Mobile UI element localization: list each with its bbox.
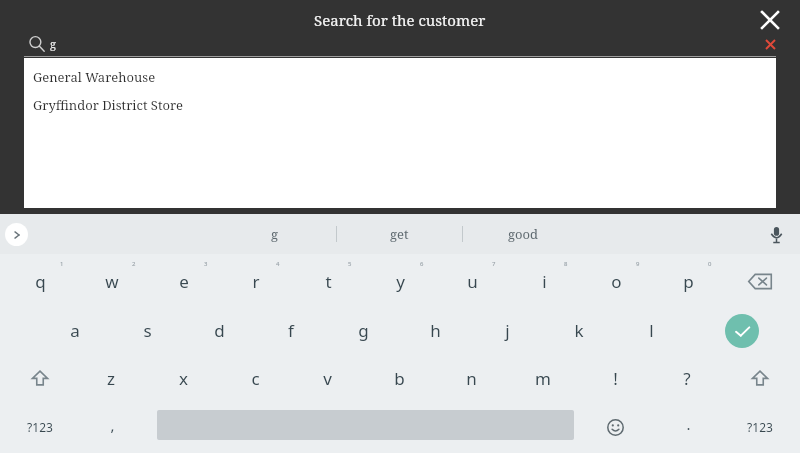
staticText: s bbox=[143, 319, 152, 342]
staticText: g bbox=[271, 225, 278, 243]
button[interactable]: good bbox=[473, 219, 573, 249]
button[interactable]: Expand suggestions bbox=[5, 223, 28, 246]
staticText: y bbox=[396, 270, 405, 293]
button[interactable]: Voice input bbox=[762, 221, 790, 249]
button[interactable]: ?123 bbox=[14, 405, 66, 449]
staticText: n bbox=[466, 367, 477, 390]
button[interactable]: ? bbox=[661, 356, 713, 400]
button[interactable]: n bbox=[445, 356, 497, 400]
button[interactable]: General Warehouse bbox=[24, 63, 776, 91]
button[interactable]: h bbox=[409, 308, 461, 352]
staticText: General Warehouse bbox=[33, 68, 156, 86]
staticText: q bbox=[35, 270, 46, 293]
staticText: l bbox=[649, 319, 654, 342]
button[interactable]: g bbox=[224, 219, 324, 249]
button[interactable]: u bbox=[446, 259, 498, 303]
button[interactable]: Emoji bbox=[589, 405, 641, 449]
button[interactable]: e bbox=[158, 259, 210, 303]
staticText: 9 bbox=[636, 260, 640, 268]
button[interactable]: q bbox=[14, 259, 66, 303]
staticText: e bbox=[179, 270, 189, 293]
staticText: 7 bbox=[492, 260, 496, 268]
staticText: u bbox=[467, 270, 478, 293]
button[interactable]: Close bbox=[750, 6, 790, 34]
button[interactable]: Clear search bbox=[756, 33, 784, 55]
button[interactable]: p bbox=[662, 259, 714, 303]
button[interactable]: c bbox=[229, 356, 281, 400]
staticText: k bbox=[574, 319, 584, 342]
button[interactable]: j bbox=[481, 308, 533, 352]
staticText: v bbox=[323, 367, 332, 390]
button[interactable]: i bbox=[518, 259, 570, 303]
staticText: r bbox=[252, 270, 260, 293]
staticText: ! bbox=[613, 367, 618, 390]
staticText: t bbox=[325, 270, 332, 293]
button[interactable]: k bbox=[553, 308, 605, 352]
button[interactable]: t bbox=[302, 259, 354, 303]
button[interactable]: g bbox=[337, 308, 389, 352]
button[interactable]: Shift bbox=[14, 356, 66, 400]
button[interactable]: l bbox=[625, 308, 677, 352]
staticText: 8 bbox=[564, 260, 568, 268]
button[interactable]: y bbox=[374, 259, 426, 303]
staticText: 0 bbox=[708, 260, 712, 268]
staticText: d bbox=[214, 319, 225, 342]
staticText: 3 bbox=[204, 260, 208, 268]
button[interactable]: Backspace bbox=[734, 259, 786, 303]
staticText: good bbox=[508, 225, 538, 243]
staticText: 6 bbox=[420, 260, 424, 268]
staticText: j bbox=[505, 319, 510, 342]
staticText: z bbox=[107, 367, 115, 390]
staticText: 2 bbox=[132, 260, 136, 268]
button[interactable]: x bbox=[157, 356, 209, 400]
button[interactable]: z bbox=[85, 356, 137, 400]
button[interactable]: Shift bbox=[734, 356, 786, 400]
staticText: i bbox=[542, 270, 547, 293]
staticText: o bbox=[611, 270, 622, 293]
staticText: . bbox=[686, 414, 691, 434]
staticText: h bbox=[430, 319, 441, 342]
button[interactable]: f bbox=[265, 308, 317, 352]
button[interactable]: ! bbox=[589, 356, 641, 400]
button[interactable]: get bbox=[349, 219, 449, 249]
button[interactable]: , bbox=[86, 403, 138, 447]
staticText: get bbox=[390, 225, 409, 243]
button[interactable]: a bbox=[49, 308, 101, 352]
button[interactable]: Search bbox=[24, 33, 50, 55]
staticText: 5 bbox=[348, 260, 352, 268]
button[interactable]: ?123 bbox=[734, 405, 786, 449]
staticText: ?123 bbox=[747, 419, 773, 435]
staticText: c bbox=[251, 367, 260, 390]
button[interactable]: w bbox=[86, 259, 138, 303]
staticText: Search for the customer bbox=[314, 10, 486, 30]
staticText: g bbox=[50, 36, 56, 51]
button[interactable]: Gryffindor District Store bbox=[24, 91, 776, 119]
staticText: b bbox=[394, 367, 405, 390]
staticText: 4 bbox=[276, 260, 280, 268]
staticText: ?123 bbox=[27, 419, 53, 435]
button[interactable]: b bbox=[373, 356, 425, 400]
staticText: g bbox=[358, 319, 369, 342]
button[interactable]: Enter bbox=[716, 309, 768, 353]
staticText: m bbox=[535, 367, 551, 390]
button[interactable]: . bbox=[662, 402, 714, 446]
staticText: w bbox=[105, 270, 119, 293]
button[interactable]: m bbox=[517, 356, 569, 400]
button[interactable]: o bbox=[590, 259, 642, 303]
staticText: f bbox=[288, 319, 294, 342]
staticText: , bbox=[110, 415, 115, 435]
staticText: p bbox=[683, 270, 694, 293]
staticText: a bbox=[70, 319, 80, 342]
button[interactable]: v bbox=[301, 356, 353, 400]
button[interactable]: r bbox=[230, 259, 282, 303]
button[interactable]: d bbox=[193, 308, 245, 352]
staticText: x bbox=[179, 367, 188, 390]
staticText: 1 bbox=[60, 260, 64, 268]
staticText: ? bbox=[683, 367, 691, 390]
staticText: Gryffindor District Store bbox=[33, 96, 184, 114]
button[interactable]: s bbox=[121, 308, 173, 352]
